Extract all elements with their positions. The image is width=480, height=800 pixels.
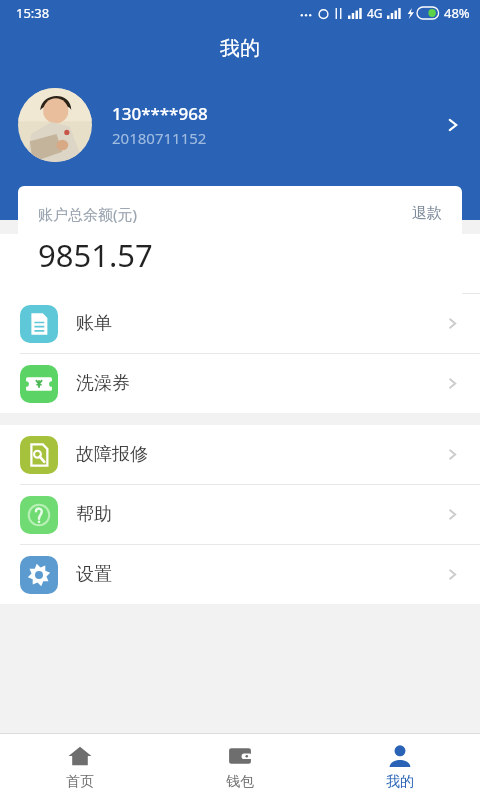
staticText: 钱包 — [226, 773, 254, 791]
staticText: 我的 — [0, 36, 480, 61]
button[interactable]: 账单 — [0, 294, 480, 353]
staticText: 退款 — [412, 204, 442, 223]
staticText: 账户总余额(元) — [38, 204, 138, 224]
button[interactable]: 故障报修 — [0, 425, 480, 484]
staticText: 设置 — [76, 563, 112, 586]
staticText: 130****968 — [112, 102, 208, 125]
button[interactable]: 130****968 — [0, 88, 480, 162]
staticText: 帮助 — [76, 503, 112, 526]
button[interactable]: 帮助 — [0, 485, 480, 544]
button[interactable]: 首页 — [0, 734, 160, 800]
staticText: 首页 — [66, 773, 94, 791]
staticText: 48% — [444, 4, 470, 22]
button[interactable]: 钱包 — [160, 734, 320, 800]
button[interactable]: 设置 — [0, 545, 480, 604]
staticText: 20180711152 — [112, 128, 207, 148]
staticText: 4G — [367, 5, 383, 21]
button[interactable]: 账户总余额(元) — [18, 186, 462, 300]
staticText: 积分 — [76, 252, 112, 275]
button[interactable]: 积分 — [0, 234, 480, 293]
staticText: 故障报修 — [76, 443, 148, 466]
button[interactable]: 洗澡券 — [0, 354, 480, 413]
staticText: 账单 — [76, 312, 112, 335]
staticText: 我的 — [386, 773, 414, 791]
staticText: 9851.57 — [38, 234, 153, 276]
button[interactable]: 我的 — [320, 734, 480, 800]
staticText: 洗澡券 — [76, 372, 130, 395]
staticText: 15:38 — [16, 4, 50, 22]
